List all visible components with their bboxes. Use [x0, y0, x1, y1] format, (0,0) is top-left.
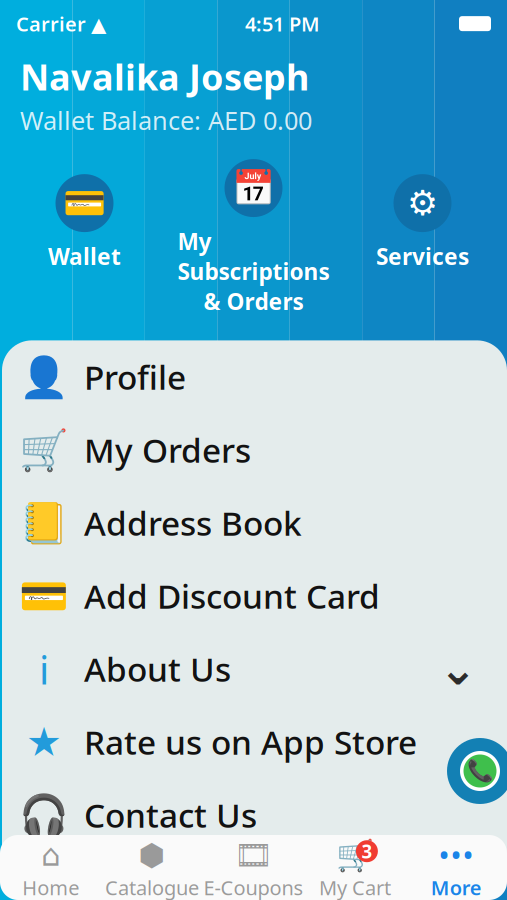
button[interactable]: 🛒	[2, 413, 507, 486]
staticText: Services	[376, 241, 469, 271]
staticText: My Subscriptions	[177, 226, 329, 286]
staticText: Contact Us	[84, 793, 257, 837]
button[interactable]: ⌂	[0, 840, 101, 900]
button[interactable]: ⬢	[101, 840, 203, 900]
staticText: Wallet	[48, 241, 121, 271]
staticText: Wallet Balance: AED 0.00	[20, 103, 312, 137]
staticText: 📒	[19, 500, 69, 546]
button[interactable]: ℹ	[2, 632, 507, 705]
staticText: About Us	[84, 647, 231, 691]
staticText: Rate us on App Store	[84, 720, 417, 764]
button[interactable]: Wallet	[0, 174, 169, 301]
staticText: & Orders	[203, 286, 303, 316]
staticText: Home	[22, 874, 79, 900]
button[interactable]: 🎧	[2, 778, 507, 851]
staticText: Navalika Joseph	[20, 53, 309, 100]
staticText: Carrier ▲	[16, 10, 106, 37]
staticText: 4:51 PM	[245, 10, 320, 37]
button[interactable]: Services	[338, 174, 507, 301]
staticText: E-Coupons	[203, 874, 303, 900]
staticText: Address Book	[84, 501, 302, 545]
staticText: 🎞	[234, 838, 273, 873]
button[interactable]: 👤	[2, 340, 507, 413]
button[interactable]: Chat on WhatsApp	[447, 738, 507, 804]
staticText: ⌂	[41, 838, 60, 873]
button[interactable]: 💳	[2, 559, 507, 632]
staticText: 💳	[63, 183, 106, 223]
staticText: My Cart	[319, 874, 391, 900]
staticText: 🛒	[336, 838, 374, 873]
staticText: •••	[438, 835, 474, 876]
button[interactable]: •••	[406, 840, 507, 900]
staticText: ⌄	[439, 643, 477, 695]
staticText: Catalogue	[105, 874, 199, 900]
staticText: Add Discount Card	[84, 574, 380, 618]
staticText: 💳	[19, 573, 69, 619]
button[interactable]: 🛒	[304, 840, 406, 900]
button[interactable]: 🎞	[203, 840, 304, 900]
staticText: My Orders	[84, 428, 251, 472]
staticText: 📞	[466, 759, 493, 783]
staticText: ⚙	[407, 183, 438, 223]
staticText: 👤	[19, 354, 69, 400]
staticText: ⬢	[139, 838, 166, 873]
button[interactable]: ★	[2, 705, 507, 778]
staticText: 🎧	[19, 792, 69, 838]
button[interactable]: 📒	[2, 486, 507, 559]
staticText: ℹ	[39, 642, 49, 695]
staticText: ★	[26, 719, 62, 765]
staticText: 🛒	[19, 427, 69, 473]
staticText: More	[431, 874, 482, 900]
staticText: 📍	[19, 843, 69, 889]
staticText: 3	[361, 839, 372, 864]
staticText: Profile	[84, 355, 186, 399]
button[interactable]: My Subscriptions	[169, 159, 338, 316]
staticText: 📅	[232, 168, 275, 208]
